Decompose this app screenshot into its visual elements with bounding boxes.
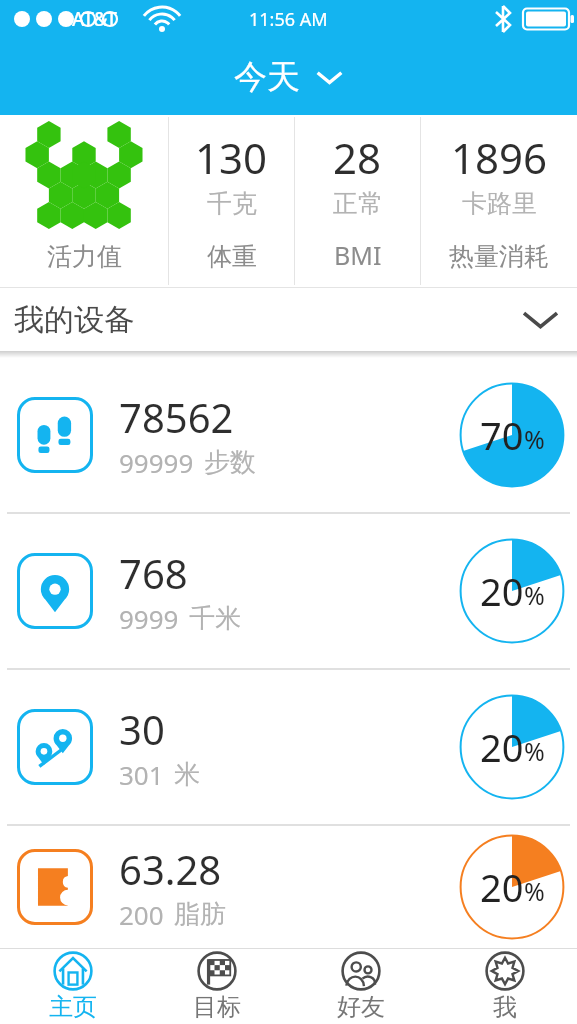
- button[interactable]: 768: [0, 514, 577, 668]
- button[interactable]: 30: [0, 670, 577, 824]
- staticText: 301: [119, 757, 164, 792]
- staticText: 20: [480, 721, 524, 773]
- staticText: AT&T: [72, 6, 117, 32]
- button[interactable]: 活力值: [0, 115, 168, 287]
- button[interactable]: 主页: [0, 949, 145, 1024]
- staticText: 千米: [189, 602, 241, 635]
- staticText: %: [524, 422, 545, 456]
- staticText: 米: [174, 758, 200, 791]
- staticText: 热量消耗: [449, 241, 549, 272]
- button[interactable]: 目标: [145, 949, 289, 1024]
- staticText: 30: [119, 702, 165, 756]
- staticText: 体重: [207, 241, 257, 272]
- staticText: 活力值: [47, 241, 122, 272]
- staticText: 11:56 AM: [249, 7, 328, 32]
- staticText: 我的设备: [14, 301, 134, 339]
- button[interactable]: 我的设备: [0, 288, 577, 351]
- button[interactable]: 63.28: [0, 826, 577, 948]
- staticText: 我: [493, 992, 517, 1022]
- staticText: 脂肪: [174, 898, 226, 931]
- staticText: 目标: [193, 992, 241, 1022]
- staticText: 28: [333, 129, 382, 186]
- staticText: 63.28: [119, 842, 222, 896]
- staticText: 78562: [119, 390, 234, 444]
- staticText: 130: [195, 129, 268, 186]
- button[interactable]: Select day: [0, 38, 577, 115]
- staticText: 9999: [119, 601, 179, 636]
- staticText: 70: [480, 409, 524, 461]
- staticText: 200: [119, 897, 164, 932]
- staticText: 99999: [119, 445, 194, 480]
- button[interactable]: 78562: [0, 358, 577, 512]
- staticText: 768: [119, 546, 188, 600]
- button[interactable]: 好友: [289, 949, 433, 1024]
- button[interactable]: 我: [433, 949, 577, 1024]
- staticText: %: [524, 874, 545, 908]
- staticText: 20: [480, 861, 524, 913]
- button[interactable]: 1896: [421, 115, 577, 287]
- staticText: %: [524, 734, 545, 768]
- staticText: 千克: [207, 188, 257, 219]
- staticText: 卡路里: [462, 188, 537, 219]
- button[interactable]: 130: [169, 115, 294, 287]
- staticText: 正常: [333, 188, 383, 219]
- staticText: 今天: [234, 56, 300, 98]
- staticText: 好友: [337, 992, 385, 1022]
- staticText: 主页: [49, 992, 97, 1022]
- staticText: %: [524, 578, 545, 612]
- staticText: 步数: [204, 446, 256, 479]
- staticText: 20: [480, 565, 524, 617]
- staticText: BMI: [334, 238, 382, 272]
- button[interactable]: 28: [295, 115, 420, 287]
- staticText: 1896: [451, 129, 548, 186]
